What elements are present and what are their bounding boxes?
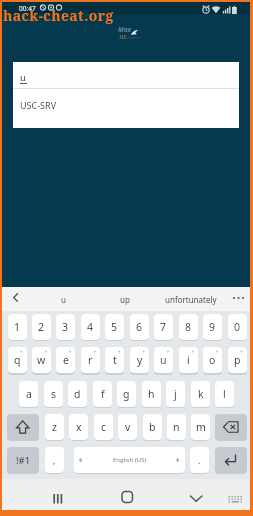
staticText: unfortunately xyxy=(165,294,217,305)
button[interactable]: j xyxy=(166,381,185,407)
staticText: f xyxy=(101,387,105,401)
staticText: m xyxy=(196,420,206,434)
button[interactable]: q xyxy=(8,347,27,373)
staticText: 7 xyxy=(160,320,167,334)
staticText: USC-SRV xyxy=(20,99,57,111)
staticText: r xyxy=(88,353,93,367)
button[interactable]: 6 xyxy=(130,314,149,340)
staticText: l xyxy=(223,387,226,401)
button[interactable]: 8 xyxy=(179,314,198,340)
button[interactable]: n xyxy=(167,414,186,440)
staticText: up xyxy=(120,294,130,305)
staticText: e xyxy=(63,353,69,367)
button[interactable]: y xyxy=(130,347,149,373)
staticText: hack-cheat.org xyxy=(3,6,114,25)
staticText: 9 xyxy=(209,320,216,334)
button[interactable]: d xyxy=(68,381,87,407)
button[interactable]: r xyxy=(81,347,100,373)
button[interactable]: !#1 xyxy=(7,447,39,473)
staticText: 2 xyxy=(38,320,45,334)
button[interactable]: c xyxy=(94,414,113,440)
staticText: h xyxy=(148,387,155,401)
staticText: j xyxy=(174,387,177,401)
button[interactable]: b xyxy=(143,414,162,440)
button[interactable]: . xyxy=(190,447,209,473)
button[interactable]: m xyxy=(191,414,210,440)
staticText: 8 xyxy=(185,320,192,334)
button[interactable]: 0 xyxy=(228,314,247,340)
button[interactable] xyxy=(84,479,167,510)
staticText: c xyxy=(101,420,107,434)
staticText: 5 xyxy=(111,320,118,334)
button[interactable] xyxy=(215,447,247,473)
button[interactable]: u xyxy=(13,62,239,88)
button[interactable]: e xyxy=(56,347,75,373)
staticText: , xyxy=(53,454,56,466)
button[interactable] xyxy=(7,414,39,440)
staticText: u xyxy=(20,71,26,84)
button[interactable]: z xyxy=(45,414,64,440)
button[interactable]: 1 xyxy=(8,314,27,340)
button[interactable]: o xyxy=(203,347,222,373)
button[interactable]: h xyxy=(142,381,161,407)
button[interactable] xyxy=(2,479,84,510)
staticText: UC xyxy=(120,34,127,40)
staticText: s xyxy=(51,387,57,401)
button[interactable]: , xyxy=(45,447,64,473)
staticText: b xyxy=(149,420,156,434)
button[interactable]: u xyxy=(48,287,78,311)
staticText: y xyxy=(137,353,143,367)
button[interactable]: g xyxy=(117,381,136,407)
staticText: English (US) xyxy=(113,456,147,464)
button[interactable]: unfortunately xyxy=(161,287,221,311)
staticText: !#1 xyxy=(16,454,31,467)
staticText: d xyxy=(74,387,81,401)
button[interactable]: w xyxy=(32,347,51,373)
button[interactable]: i xyxy=(179,347,198,373)
staticText: u xyxy=(61,294,66,305)
button[interactable]: a xyxy=(19,381,38,407)
staticText: . xyxy=(198,454,201,466)
staticText: u xyxy=(160,353,167,367)
button[interactable]: English (US) xyxy=(74,447,185,473)
staticText: p xyxy=(234,353,241,367)
staticText: t xyxy=(113,353,117,367)
staticText: Max xyxy=(118,25,132,34)
button[interactable]: 7 xyxy=(154,314,173,340)
button[interactable]: s xyxy=(44,381,63,407)
button[interactable]: up xyxy=(107,287,143,311)
button[interactable]: USC-SRV xyxy=(13,89,239,128)
button[interactable]: v xyxy=(118,414,137,440)
button[interactable]: l xyxy=(215,381,234,407)
button[interactable]: k xyxy=(191,381,210,407)
button[interactable] xyxy=(215,414,247,440)
staticText: 0 xyxy=(234,320,241,334)
staticText: o xyxy=(209,353,216,367)
staticText: n xyxy=(173,420,180,434)
button[interactable]: t xyxy=(105,347,124,373)
staticText: g xyxy=(123,387,130,401)
staticText: 6 xyxy=(136,320,143,334)
staticText: 00:47 xyxy=(19,4,36,13)
button[interactable]: 4 xyxy=(81,314,100,340)
staticText: x xyxy=(76,420,82,434)
button[interactable] xyxy=(167,479,250,510)
staticText: k xyxy=(198,387,204,401)
button[interactable]: p xyxy=(228,347,247,373)
staticText: z xyxy=(52,420,57,434)
button[interactable]: 3 xyxy=(56,314,75,340)
staticText: a xyxy=(26,387,32,401)
staticText: q xyxy=(14,353,21,367)
staticText: v xyxy=(125,420,131,434)
button[interactable]: 9 xyxy=(203,314,222,340)
button[interactable]: 5 xyxy=(105,314,124,340)
staticText: 3 xyxy=(62,320,69,334)
staticText: 1 xyxy=(14,320,21,334)
button[interactable]: f xyxy=(93,381,112,407)
staticText: i xyxy=(187,353,190,367)
staticText: 4 xyxy=(87,320,94,334)
staticText: w xyxy=(37,353,46,367)
button[interactable]: x xyxy=(69,414,88,440)
button[interactable]: 2 xyxy=(32,314,51,340)
button[interactable]: u xyxy=(154,347,173,373)
